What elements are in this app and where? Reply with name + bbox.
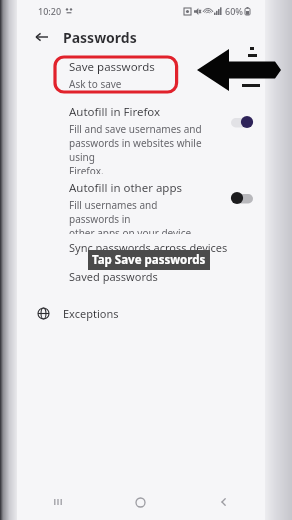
button[interactable]: Recents <box>17 484 99 520</box>
button[interactable]: Autofill in other apps <box>17 174 265 234</box>
button[interactable]: Autofill in Firefox <box>17 98 265 174</box>
button[interactable]: Back <box>31 26 53 48</box>
staticText: Passwords <box>63 28 137 47</box>
staticText: Exceptions <box>63 306 119 321</box>
button[interactable]: Exceptions <box>17 300 265 326</box>
staticText: 60% <box>225 5 243 17</box>
staticText: 10:20 <box>38 5 62 17</box>
staticText: Tap Save passwords <box>92 252 206 268</box>
button[interactable]: Home <box>99 484 182 520</box>
staticText: Saved passwords <box>69 269 158 284</box>
staticText: Sync passwords across devices <box>69 240 228 255</box>
staticText: Ask to save <box>69 77 122 91</box>
button[interactable]: Back <box>182 484 265 520</box>
staticText: Fill and save usernames and passwords in… <box>69 122 203 174</box>
staticText: Autofill in other apps <box>69 180 183 196</box>
staticText: Save passwords <box>69 59 155 75</box>
button[interactable]: Save passwords <box>17 52 265 98</box>
staticText: Fill usernames and passwords in other ap… <box>69 198 203 234</box>
staticText: Autofill in Firefox <box>69 104 161 120</box>
button[interactable]: Sync passwords across devices <box>17 234 265 284</box>
